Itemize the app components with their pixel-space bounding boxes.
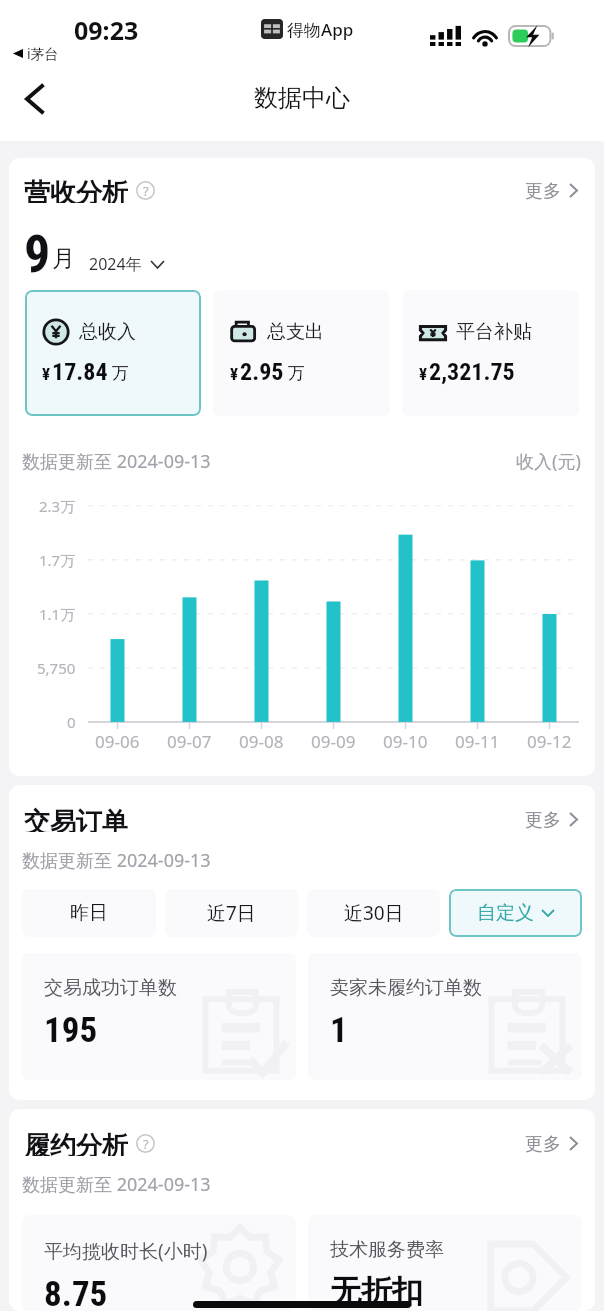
staticText: 数据更新至 2024-09-13 [22, 1172, 211, 1197]
staticText: 5,750 [37, 658, 76, 678]
staticText: 卖家未履约订单数 [330, 976, 482, 1000]
staticText: 无折扣 [330, 1272, 423, 1311]
staticText: 09-06 [95, 730, 140, 753]
staticText: 平台补贴 [456, 320, 532, 344]
staticText: 更多 [525, 1133, 561, 1153]
staticText: 1.7万 [39, 550, 76, 570]
staticText: 09-11 [455, 730, 500, 753]
staticText: 总收入 [79, 320, 136, 344]
button[interactable]: 近30日 [307, 889, 440, 937]
button[interactable]: 2024年 [87, 251, 167, 277]
button[interactable]: 昨日 [22, 889, 156, 937]
staticText: 万 [112, 363, 129, 384]
staticText: ¥ [230, 364, 239, 384]
staticText: 09-09 [311, 730, 356, 753]
button[interactable]: 更多 [522, 177, 581, 203]
staticText: ¥ [419, 364, 428, 384]
staticText: 2024年 [89, 253, 142, 275]
staticText: 2,321.75 [429, 358, 515, 386]
staticText: 195 [44, 1010, 98, 1051]
staticText: i茅台 [27, 44, 59, 63]
staticText: 数据中心 [254, 83, 350, 113]
staticText: 自定义 [477, 901, 534, 925]
staticText: 昨日 [70, 901, 108, 925]
staticText: 近30日 [344, 900, 404, 926]
staticText: ? [143, 1135, 149, 1153]
staticText: 更多 [525, 180, 561, 200]
button[interactable]: 平台补贴 [402, 290, 579, 416]
button[interactable]: Help [136, 1134, 155, 1153]
button[interactable]: 总收入 [25, 290, 201, 416]
staticText: 总支出 [267, 320, 324, 344]
staticText: 交易成功订单数 [44, 976, 177, 1000]
button[interactable]: 卖家未履约订单数 [308, 953, 582, 1080]
staticText: 得物App [287, 18, 354, 41]
staticText: 1 [330, 1010, 348, 1051]
button[interactable]: 平均揽收时长(小时) [22, 1215, 296, 1311]
staticText: 平均揽收时长(小时) [44, 1238, 208, 1264]
button[interactable]: 更多 [522, 1130, 581, 1156]
staticText: 交易订单 [24, 806, 128, 832]
staticText: 月 [52, 244, 75, 273]
staticText: 0 [67, 712, 76, 732]
staticText: 万 [288, 363, 305, 384]
staticText: 数据更新至 2024-09-13 [22, 848, 211, 873]
staticText: 收入(元) [516, 449, 581, 474]
staticText: 09-08 [239, 730, 284, 753]
button[interactable]: Help [136, 181, 155, 200]
staticText: ¥ [42, 364, 51, 384]
staticText: 9 [24, 224, 51, 285]
button[interactable]: 更多 [522, 806, 581, 832]
staticText: 1.1万 [39, 604, 76, 624]
staticText: 2.95 [240, 358, 284, 386]
staticText: ? [143, 182, 149, 200]
staticText: 技术服务费率 [330, 1238, 444, 1262]
staticText: 营收分析 [24, 177, 128, 203]
staticText: 2.3万 [39, 496, 76, 516]
button[interactable]: 总支出 [213, 290, 390, 416]
staticText: 09-07 [167, 730, 212, 753]
button[interactable]: 交易成功订单数 [22, 953, 296, 1080]
staticText: 履约分析 [24, 1130, 128, 1156]
staticText: 09-10 [383, 730, 428, 753]
staticText: 数据更新至 2024-09-13 [22, 449, 211, 474]
staticText: 09:23 [74, 13, 139, 47]
button[interactable]: Back [11, 76, 57, 122]
staticText: 近7日 [207, 900, 256, 926]
staticText: 09-12 [527, 730, 572, 753]
button[interactable]: 近7日 [165, 889, 298, 937]
button[interactable]: 技术服务费率 [308, 1215, 582, 1311]
staticText: 更多 [525, 809, 561, 829]
staticText: 17.84 [52, 358, 108, 386]
staticText: 8.75 [44, 1274, 108, 1311]
button[interactable]: 自定义 [449, 889, 582, 937]
